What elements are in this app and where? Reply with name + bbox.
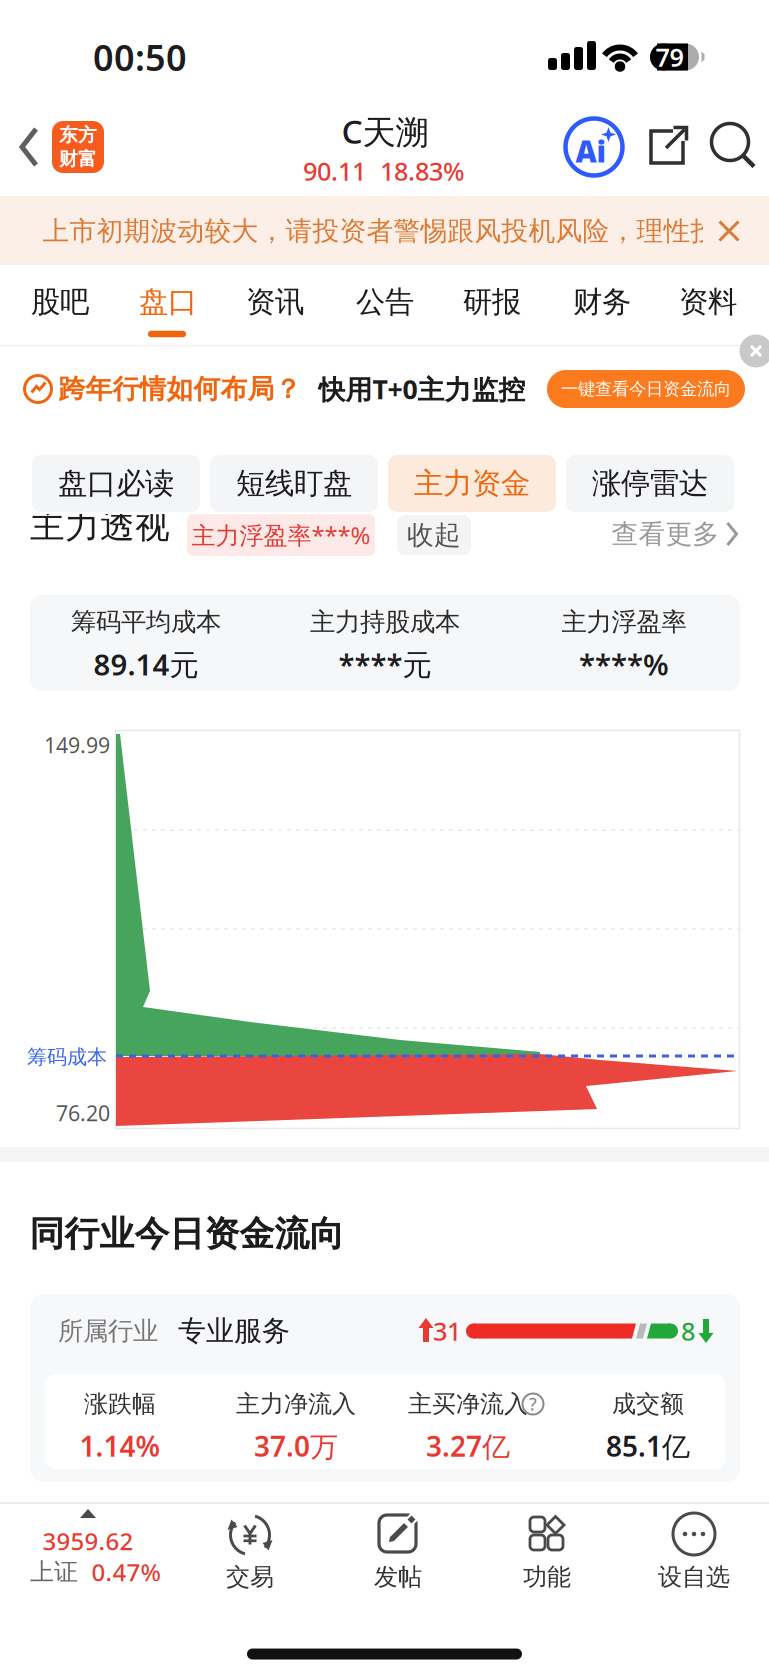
button[interactable]: 查看更多 <box>611 518 738 550</box>
staticText: 资讯 <box>246 284 304 320</box>
button[interactable]: 资讯 <box>227 267 322 337</box>
staticText: 89.14元 <box>93 644 198 683</box>
button[interactable]: 设自选 <box>672 1512 716 1556</box>
staticText: 主买净流入 <box>408 1389 528 1419</box>
staticText: 上市初期波动较大，请投资者警惕跟风投机风险，理性投 <box>42 215 717 247</box>
staticText: 8 <box>681 1314 695 1348</box>
staticText: 主力持股成本 <box>310 606 460 637</box>
staticText: ? <box>529 1392 537 1415</box>
staticText: 3959.62 <box>42 1525 133 1557</box>
button[interactable]: 关闭 <box>739 334 769 367</box>
button[interactable]: 资料 <box>660 267 755 337</box>
staticText: 设自选 <box>658 1562 730 1592</box>
staticText: 主力透视 <box>30 505 170 547</box>
button[interactable]: 盘口 <box>120 267 215 337</box>
staticText: 主力净流入 <box>236 1389 356 1419</box>
staticText: 31 <box>433 1314 461 1348</box>
button[interactable]: 功能 <box>529 1515 565 1551</box>
staticText: 0.47% <box>91 1556 160 1588</box>
button[interactable]: Back <box>21 127 41 167</box>
button[interactable]: 分享 <box>643 123 691 171</box>
staticText: 快用T+0主力监控 <box>318 371 525 407</box>
staticText: 东方 <box>59 124 97 146</box>
staticText: 1.14% <box>79 1427 160 1465</box>
staticText: 专业服务 <box>178 1314 290 1348</box>
staticText: ****% <box>579 644 669 683</box>
staticText: 公告 <box>356 284 414 320</box>
staticText: 37.0万 <box>254 1427 338 1465</box>
button[interactable]: AI 助手 <box>565 118 623 176</box>
button[interactable]: 涨停雷达 <box>566 455 734 512</box>
staticText: C天溯 <box>341 109 428 153</box>
button[interactable]: 一键查看今日资金流向 <box>547 370 745 408</box>
staticText: 85.1亿 <box>606 1427 690 1465</box>
staticText: 筹码成本 <box>27 1045 107 1069</box>
staticText: 上证 <box>30 1557 78 1587</box>
button[interactable]: 研报 <box>444 267 539 337</box>
staticText: 主力浮盈率***% <box>191 519 370 551</box>
staticText: 涨跌幅 <box>84 1389 156 1419</box>
button[interactable]: 交易 <box>228 1513 272 1557</box>
staticText: 90.11 18.83% <box>303 154 465 188</box>
staticText: 盘口 <box>139 284 197 320</box>
button[interactable]: 上证指数 <box>2 1506 172 1584</box>
staticText: 涨停雷达 <box>592 465 708 501</box>
staticText: 主力资金 <box>414 465 530 501</box>
staticText: 股吧 <box>31 284 89 320</box>
staticText: 资料 <box>679 284 737 320</box>
staticText: 所属行业 <box>58 1315 158 1346</box>
staticText: 交易 <box>226 1562 274 1592</box>
button[interactable]: 公告 <box>337 267 432 337</box>
staticText: 查看更多 <box>611 518 719 550</box>
button[interactable]: 财务 <box>554 267 649 337</box>
button[interactable]: 东方财富 <box>52 121 104 173</box>
button[interactable]: 收起 <box>397 515 471 555</box>
staticText: 一键查看今日资金流向 <box>561 378 731 400</box>
staticText: 功能 <box>523 1562 571 1592</box>
button[interactable]: 主力资金 <box>388 455 556 512</box>
button[interactable]: 盘口必读 <box>32 455 200 512</box>
staticText: Ai <box>575 131 606 170</box>
staticText: 收起 <box>407 519 461 551</box>
staticText: 发帖 <box>374 1562 422 1592</box>
staticText: 研报 <box>463 284 521 320</box>
staticText: 跨年行情如何布局？ <box>58 373 301 405</box>
staticText: 79 <box>655 40 683 74</box>
staticText: 财务 <box>573 284 631 320</box>
staticText: 财富 <box>59 147 97 170</box>
staticText: 成交额 <box>612 1389 684 1419</box>
staticText: 76.20 <box>56 1099 110 1127</box>
staticText: 同行业今日资金流向 <box>29 1213 344 1255</box>
button[interactable]: 股吧 <box>12 267 107 337</box>
button[interactable]: 发帖 <box>378 1513 418 1553</box>
button[interactable]: 关闭提示 <box>714 216 743 245</box>
staticText: 00:50 <box>93 33 187 81</box>
staticText: 短线盯盘 <box>236 465 352 501</box>
button[interactable]: 短线盯盘 <box>210 455 378 512</box>
staticText: ****元 <box>338 644 431 683</box>
staticText: 149.99 <box>44 731 110 759</box>
staticText: 盘口必读 <box>58 465 174 501</box>
staticText: 主力浮盈率 <box>561 606 686 637</box>
staticText: 筹码平均成本 <box>71 606 221 637</box>
staticText: 3.27亿 <box>426 1427 510 1465</box>
button[interactable]: 搜索 <box>709 122 757 170</box>
